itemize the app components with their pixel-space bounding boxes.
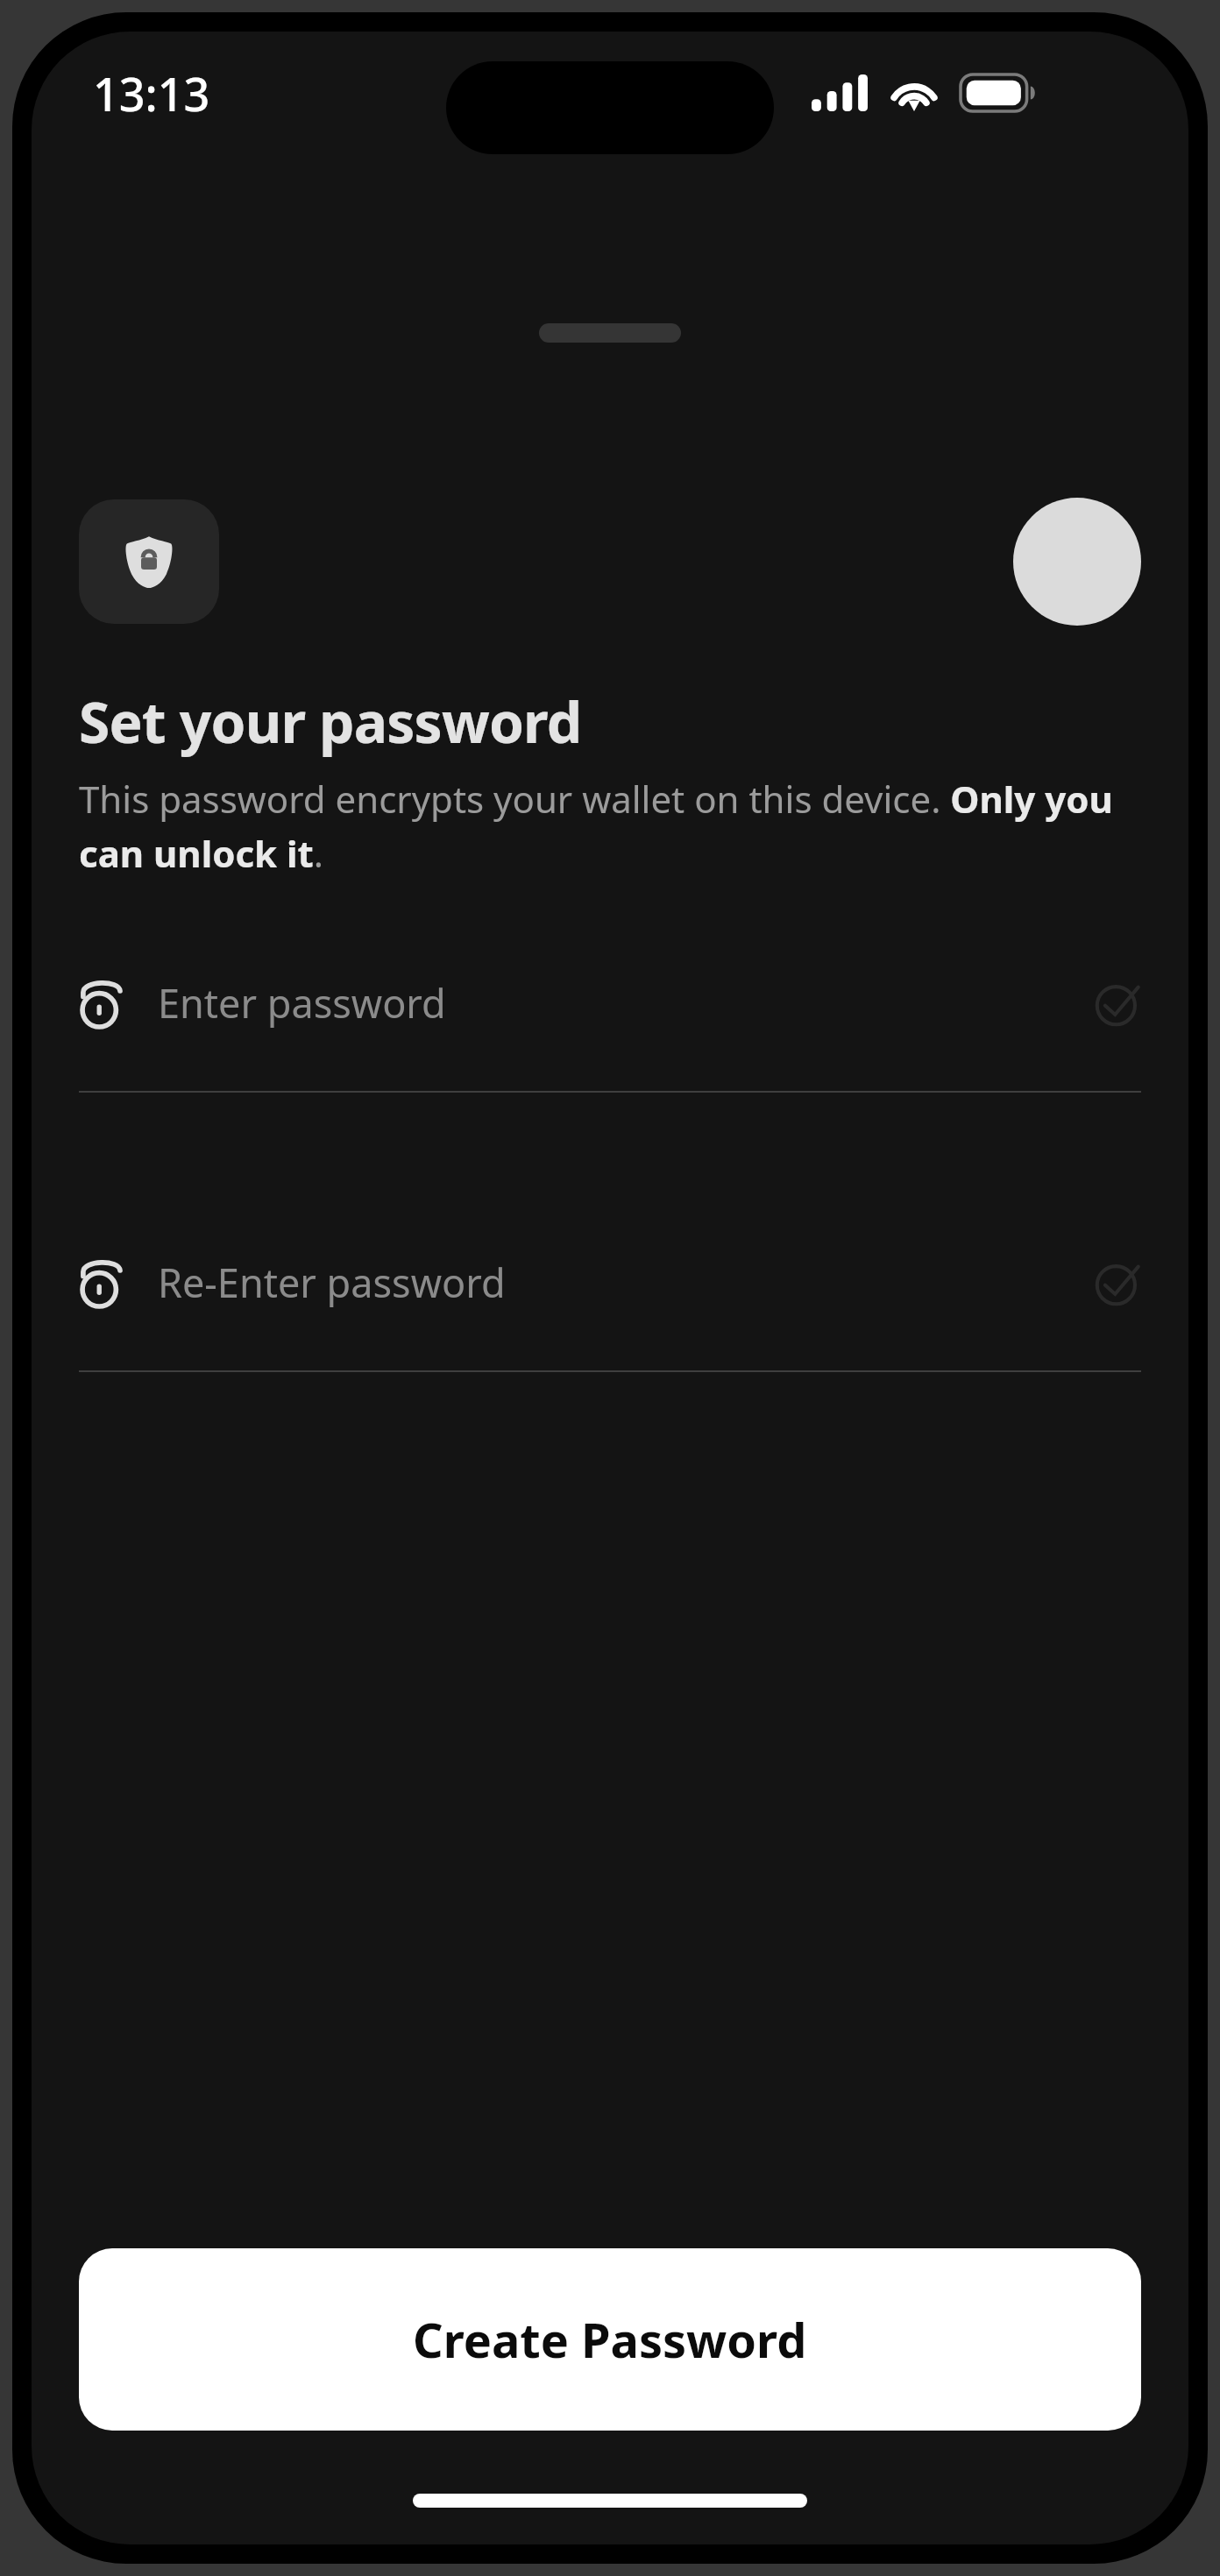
staticText: 13:13 <box>93 62 210 124</box>
button[interactable]: Create Password <box>79 2248 1141 2431</box>
staticText: Create Password <box>413 2307 807 2372</box>
button[interactable]: Enter password <box>79 976 1141 1093</box>
button[interactable]: Re-Enter password <box>79 1256 1141 1372</box>
staticText: Set your password <box>79 683 582 760</box>
button[interactable]: Profile <box>1013 498 1141 626</box>
button[interactable]: Wallet security <box>79 499 219 624</box>
staticText: Re-Enter password <box>158 1256 1094 1309</box>
staticText: This password encrypts your wallet on th… <box>79 774 1141 878</box>
staticText: Enter password <box>158 976 1094 1030</box>
